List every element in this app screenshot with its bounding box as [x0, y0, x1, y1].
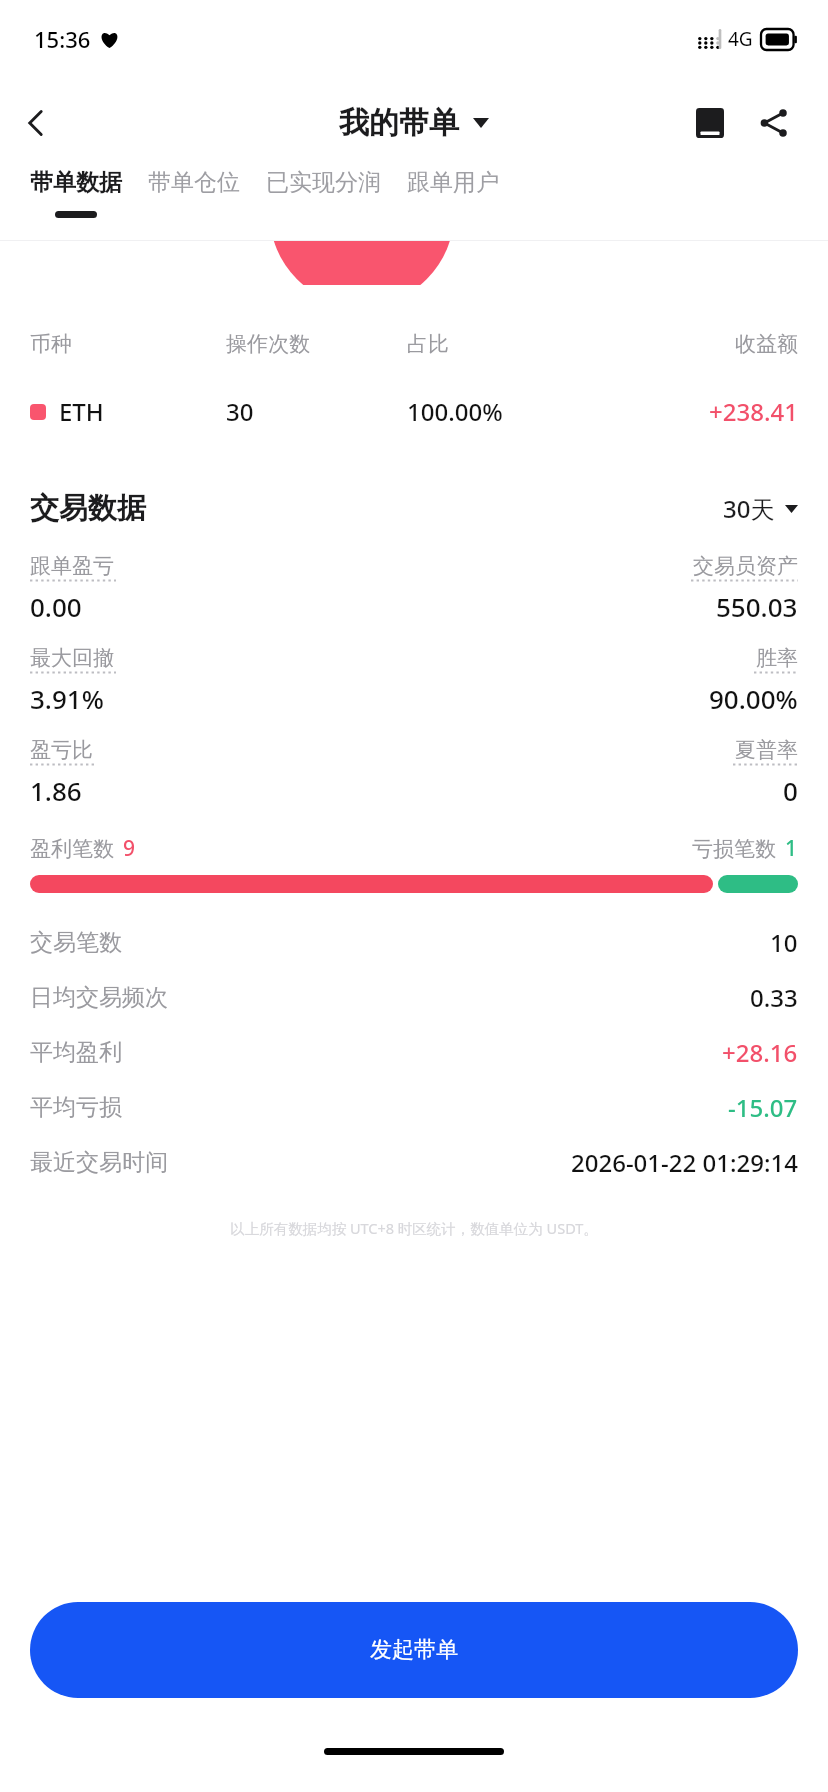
staticText: 日均交易频次 [30, 983, 168, 1012]
staticText: 1 [785, 834, 798, 863]
staticText: 交易数据 [30, 490, 146, 527]
staticText: 交易笔数 [30, 928, 122, 957]
staticText: 盈利笔数 [30, 836, 114, 862]
staticText: 已实现分润 [266, 168, 381, 197]
staticText: 平均盈利 [30, 1038, 122, 1067]
staticText: 收益额 [639, 331, 798, 357]
staticText: 带单仓位 [148, 168, 240, 197]
staticText: 30天 [723, 492, 775, 525]
staticText: +28.16 [722, 1036, 798, 1069]
staticText: 最近交易时间 [30, 1148, 168, 1177]
button[interactable]: Back [0, 87, 72, 159]
staticText: 最大回撤 [30, 645, 114, 671]
button[interactable]: 带单数据 [30, 168, 122, 218]
staticText: 90.00% [709, 681, 798, 716]
button[interactable]: Share [742, 91, 806, 155]
staticText: 胜率 [756, 645, 798, 671]
staticText: 跟单用户 [407, 168, 499, 197]
button[interactable]: 我的带单 [339, 104, 489, 142]
staticText: 平均亏损 [30, 1093, 122, 1122]
staticText: 550.03 [716, 589, 798, 624]
staticText: ETH [59, 395, 104, 428]
staticText: 30 [226, 395, 407, 428]
staticText: 1.86 [30, 773, 82, 808]
button[interactable]: 发起带单 [30, 1602, 798, 1698]
staticText: 9 [123, 834, 136, 863]
staticText: 我的带单 [339, 104, 459, 142]
staticText: 盈亏比 [30, 737, 93, 763]
button[interactable]: 30天 [723, 492, 798, 525]
staticText: 带单数据 [30, 168, 122, 197]
button[interactable]: 带单仓位 [148, 168, 240, 211]
staticText: 15:36 [34, 24, 91, 54]
staticText: 4G [728, 26, 753, 52]
staticText: 以上所有数据均按 UTC+8 时区统计，数值单位为 USDT。 [0, 1218, 828, 1238]
staticText: 发起带单 [370, 1636, 458, 1664]
staticText: 3.91% [30, 681, 104, 716]
staticText: 10 [770, 926, 798, 959]
staticText: 币种 [30, 331, 226, 357]
staticText: 亏损笔数 [692, 836, 776, 862]
staticText: 操作次数 [226, 331, 407, 357]
button[interactable]: Notes [678, 91, 742, 155]
staticText: 100.00% [407, 395, 639, 428]
button[interactable]: 跟单用户 [407, 168, 499, 211]
button[interactable]: 已实现分润 [266, 168, 381, 211]
staticText: 交易员资产 [693, 553, 798, 579]
staticText: 跟单盈亏 [30, 553, 114, 579]
staticText: 2026-01-22 01:29:14 [571, 1146, 798, 1179]
staticText: 占比 [407, 331, 639, 357]
staticText: 0 [783, 773, 798, 808]
staticText: +238.41 [639, 395, 798, 428]
staticText: 0.33 [750, 981, 798, 1014]
staticText: 0.00 [30, 589, 82, 624]
staticText: 夏普率 [735, 737, 798, 763]
staticText: -15.07 [728, 1091, 798, 1124]
